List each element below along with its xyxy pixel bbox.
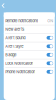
button[interactable]: New alerts [4, 25, 55, 33]
staticText: Lock Notification [5, 61, 33, 66]
button[interactable]: Alert Style [4, 42, 55, 50]
staticText: New alerts [5, 27, 24, 32]
staticText: Remote notifications [5, 18, 38, 23]
button[interactable]: Remote notifications [4, 17, 55, 25]
staticText: Alert Style [5, 44, 23, 49]
staticText: ON [47, 18, 53, 23]
staticText: Phone Notification [5, 69, 35, 74]
button[interactable]: Back [0, 0, 8, 12]
button[interactable]: Badge [4, 51, 55, 59]
button[interactable]: Lock Notification [4, 59, 55, 67]
button[interactable]: Alert Sound [4, 34, 55, 42]
button[interactable]: Phone Notification [4, 68, 55, 76]
staticText: Alert Sound [5, 35, 25, 40]
staticText: Badge [5, 52, 16, 57]
